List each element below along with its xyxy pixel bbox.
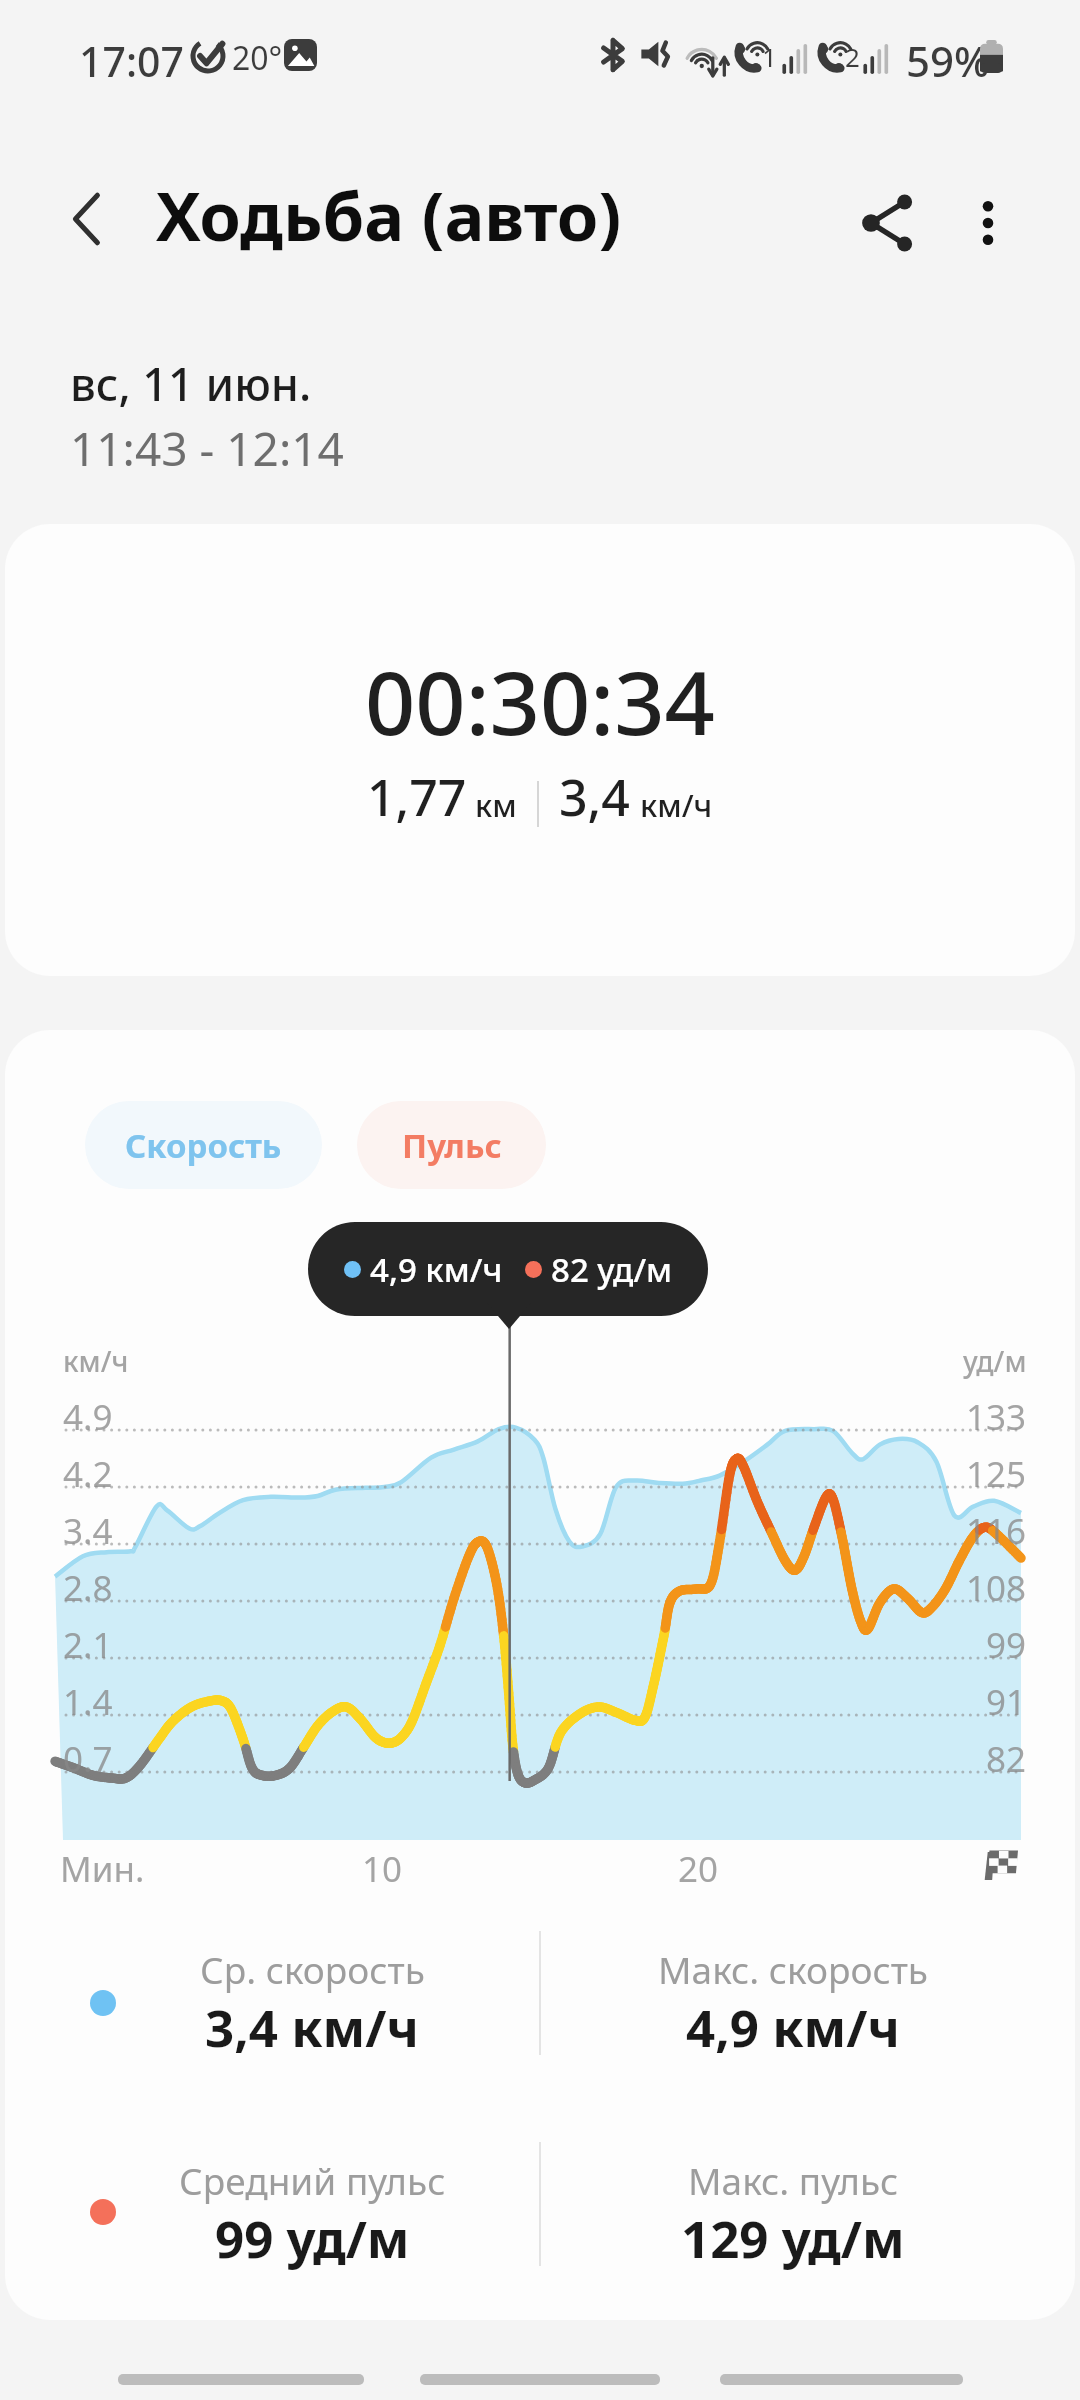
staticText: 20° [232, 36, 283, 80]
staticText: 4.9 [63, 1393, 113, 1441]
staticText: 116 [966, 1507, 1027, 1555]
staticText: 1.4 [63, 1678, 113, 1726]
staticText: Ходьба (авто) [156, 169, 622, 260]
staticText: 2 [845, 39, 860, 74]
staticText: Макс. скорость [658, 1944, 929, 1994]
staticText: 82 уд/м [551, 1247, 673, 1292]
staticText: Ср. скорость [200, 1944, 425, 1994]
staticText: Мин. [60, 1845, 145, 1893]
staticText: 4,9 км/ч [370, 1247, 503, 1292]
staticText: 1,77 [367, 763, 467, 831]
staticText: уд/м [963, 1342, 1027, 1380]
staticText: 20 [678, 1845, 719, 1893]
button[interactable]: Back [696, 2349, 987, 2400]
staticText: 99 уд/м [215, 2203, 410, 2272]
staticText: Макс. пульс [688, 2155, 899, 2205]
staticText: км [475, 784, 517, 826]
button[interactable]: Back [45, 177, 129, 261]
button[interactable]: Recents [94, 2349, 388, 2400]
button[interactable]: Share [843, 177, 935, 269]
staticText: Скорость [125, 1123, 282, 1168]
staticText: 3.4 [63, 1507, 113, 1555]
staticText: 125 [966, 1450, 1027, 1498]
button[interactable]: Пульс [357, 1101, 546, 1189]
staticText: 4,9 км/ч [686, 1992, 900, 2061]
staticText: 99 [986, 1621, 1027, 1669]
button[interactable]: 00:30:34 [5, 524, 1075, 976]
staticText: 17:07 [79, 33, 184, 89]
staticText: 2.1 [63, 1621, 113, 1669]
staticText: 108 [966, 1564, 1027, 1612]
staticText: 00:30:34 [365, 641, 715, 761]
staticText: 3,4 км/ч [205, 1992, 419, 2061]
staticText: 2.8 [63, 1564, 113, 1612]
button[interactable]: More options [942, 177, 1034, 269]
staticText: км/ч [63, 1342, 129, 1380]
staticText: 1 [762, 39, 777, 74]
staticText: км/ч [640, 784, 713, 826]
staticText: 82 [986, 1735, 1027, 1783]
staticText: вс, 11 июн. [70, 353, 312, 414]
staticText: 4.2 [63, 1450, 113, 1498]
staticText: 10 [362, 1845, 403, 1893]
staticText: Средний пульс [179, 2155, 446, 2205]
button[interactable]: Скорость [85, 1101, 322, 1189]
button[interactable]: Home [396, 2349, 684, 2400]
staticText: 59% [906, 32, 990, 89]
staticText: 91 [986, 1678, 1027, 1726]
staticText: 11:43 - 12:14 [70, 417, 344, 480]
staticText: 133 [966, 1393, 1027, 1441]
staticText: 129 уд/м [681, 2203, 905, 2272]
staticText: 3,4 [559, 763, 630, 831]
staticText: Пульс [402, 1123, 502, 1168]
staticText: 0.7 [63, 1735, 113, 1783]
